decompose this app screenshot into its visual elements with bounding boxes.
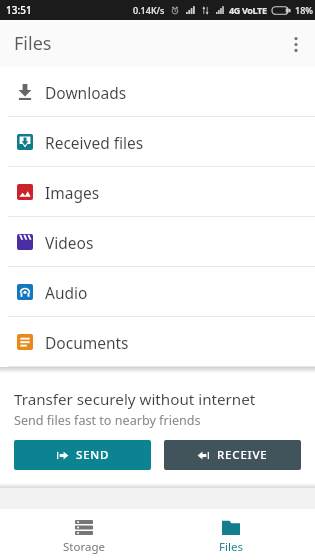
staticText: Storage xyxy=(63,539,105,555)
button[interactable]: Storage xyxy=(10,509,157,560)
button[interactable]: Videos xyxy=(0,217,315,267)
staticText: Transfer securely without internet xyxy=(14,389,256,410)
button[interactable]: Received files xyxy=(0,117,315,167)
staticText: 13:51 xyxy=(6,3,32,17)
button[interactable]: Documents xyxy=(0,317,315,367)
staticText: Images xyxy=(45,182,100,203)
staticText: 0.14K/s xyxy=(133,4,165,16)
button[interactable]: Downloads xyxy=(0,67,315,117)
staticText: Send files fast to nearby friends xyxy=(14,412,201,429)
staticText: Documents xyxy=(45,332,129,353)
staticText: 18% xyxy=(295,4,313,16)
staticText: Received files xyxy=(45,132,144,153)
button[interactable]: Images xyxy=(0,167,315,217)
staticText: Files xyxy=(219,539,243,555)
staticText: 4G VoLTE xyxy=(229,4,267,16)
staticText: Videos xyxy=(45,232,94,253)
staticText: SEND xyxy=(76,447,110,463)
staticText: Audio xyxy=(45,282,88,303)
staticText: Downloads xyxy=(45,82,127,103)
button[interactable]: RECEIVE xyxy=(164,440,301,470)
button[interactable]: More options xyxy=(280,28,312,60)
button[interactable]: Audio xyxy=(0,267,315,317)
staticText: Files xyxy=(14,31,52,56)
button[interactable]: Files xyxy=(157,509,305,560)
button[interactable]: SEND xyxy=(14,440,151,470)
staticText: RECEIVE xyxy=(217,447,268,463)
